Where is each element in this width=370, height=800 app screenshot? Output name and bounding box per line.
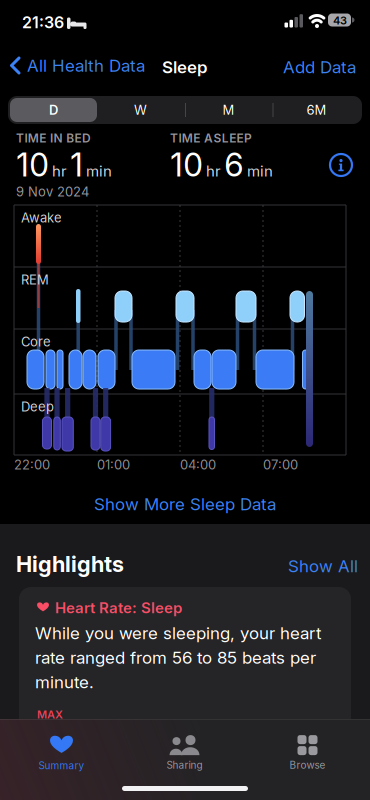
button[interactable]: W [97, 96, 184, 124]
staticText: Heart Rate: Sleep [55, 599, 182, 617]
staticText: hr [52, 162, 67, 180]
button[interactable]: M [185, 96, 272, 124]
button[interactable]: Add Data [283, 57, 356, 77]
staticText: 10 [170, 146, 203, 184]
staticText: 21:36 [22, 13, 64, 32]
staticText: hr [206, 162, 221, 180]
staticText: REM [21, 272, 49, 287]
button[interactable]: 6M [273, 96, 360, 124]
staticText: Sharing [166, 759, 202, 771]
staticText: 04:00 [180, 457, 216, 472]
staticText: D [49, 102, 58, 118]
button[interactable]: Show All [288, 556, 358, 576]
staticText: 07:00 [263, 457, 298, 472]
staticText: 10 [16, 146, 49, 184]
staticText: 6 [224, 146, 244, 184]
staticText: Show More Sleep Data [94, 494, 276, 514]
button[interactable]: Browse [246, 728, 369, 778]
staticText: M [222, 102, 234, 118]
staticText: W [134, 102, 147, 118]
staticText: min [247, 162, 273, 180]
staticText: Highlights [16, 551, 124, 577]
button[interactable]: Show More Sleep Data [0, 494, 370, 514]
staticText: 43 [333, 14, 347, 27]
staticText: 6M [306, 102, 326, 118]
staticText: Add Data [283, 57, 356, 77]
staticText: Summary [38, 760, 84, 771]
staticText: Show All [288, 556, 358, 576]
staticText: 22:00 [14, 457, 50, 472]
staticText: 1 [70, 146, 83, 184]
button[interactable]: Sharing [123, 728, 246, 778]
staticText: TIME IN BED [16, 131, 91, 145]
staticText: Core [21, 334, 51, 349]
button[interactable]: D [10, 96, 97, 124]
staticText: 01:00 [97, 457, 130, 472]
button[interactable] [329, 153, 353, 177]
staticText: Deep [21, 399, 54, 414]
staticText: TIME ASLEEP [170, 131, 252, 145]
staticText: 9 Nov 2024 [16, 184, 89, 199]
staticText: MAX [37, 708, 63, 721]
staticText: Browse [289, 759, 325, 771]
staticText: Awake [21, 210, 62, 225]
staticText: Sleep [162, 57, 208, 77]
staticText: While you were sleeping, your heart rate… [35, 623, 322, 692]
button[interactable]: Summary [0, 728, 123, 778]
button[interactable]: Heart Rate: Sleep [19, 587, 351, 800]
staticText: All Health Data [27, 55, 145, 76]
staticText: min [86, 162, 112, 180]
button[interactable]: All Health Data [10, 55, 145, 76]
